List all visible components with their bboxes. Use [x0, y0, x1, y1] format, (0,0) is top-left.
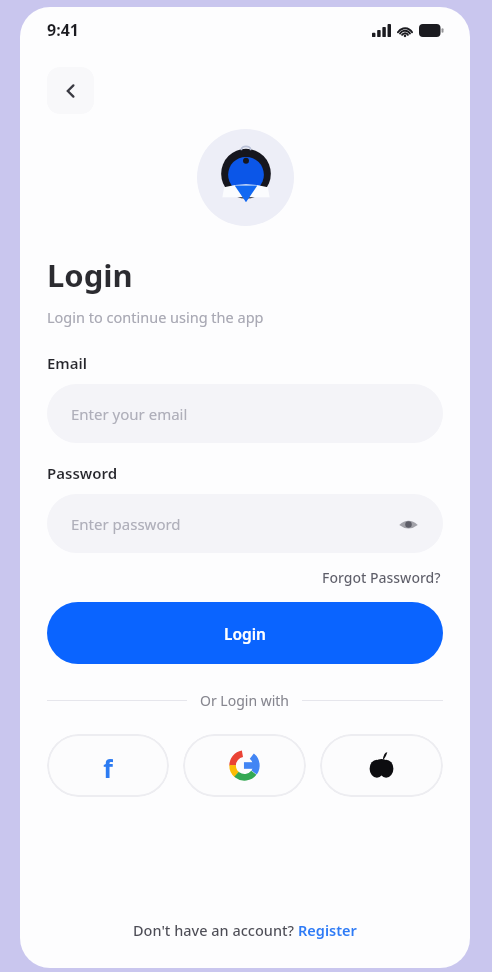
button[interactable]: Forgot Password? — [320, 566, 443, 589]
button[interactable]: Login — [47, 602, 443, 664]
staticText: f — [103, 751, 113, 781]
staticText: Login — [47, 254, 133, 296]
button[interactable]: Login with Google — [183, 734, 306, 797]
button[interactable]: Back — [47, 67, 94, 114]
button[interactable]: Login with Apple — [320, 734, 443, 797]
staticText: Register — [298, 920, 357, 940]
staticText: 9:41 — [47, 19, 79, 41]
staticText: Login — [224, 623, 267, 644]
staticText: Login to continue using the app — [47, 307, 264, 327]
button[interactable]: Login with Facebook — [47, 734, 169, 797]
button[interactable]: Enter your email — [47, 384, 443, 443]
button[interactable]: Show password — [395, 511, 421, 537]
staticText: Forgot Password? — [322, 568, 441, 587]
staticText: Email — [47, 353, 88, 373]
staticText: Password — [47, 463, 118, 483]
staticText: Don't have an account? — [133, 920, 298, 940]
button[interactable]: Register — [298, 920, 357, 940]
staticText: Or Login with — [200, 691, 289, 710]
staticText: Enter password — [71, 514, 181, 534]
staticText: Enter your email — [71, 404, 188, 424]
button[interactable]: Enter password — [47, 494, 443, 553]
